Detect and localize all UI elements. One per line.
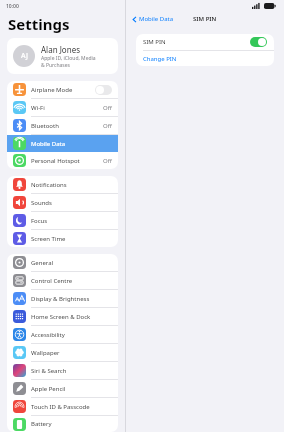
button[interactable]: Airplane Mode xyxy=(7,81,118,98)
staticText: Touch ID & Passcode xyxy=(31,403,112,411)
button[interactable] xyxy=(250,37,267,47)
button[interactable]: Notifications xyxy=(7,176,118,193)
button[interactable]: Apple Pencil xyxy=(7,380,118,397)
staticText: General xyxy=(31,259,112,267)
staticText: Wi-Fi xyxy=(31,104,103,112)
staticText: SIM PIN xyxy=(143,38,250,46)
staticText: Mobile Data xyxy=(139,15,174,23)
button[interactable]: Wi-Fi xyxy=(7,99,118,116)
staticText: Display & Brightness xyxy=(31,295,112,303)
staticText: Alan Jones xyxy=(41,44,80,55)
staticText: Change PIN xyxy=(143,55,177,63)
button[interactable]: Mobile Data xyxy=(130,13,176,25)
button[interactable]: Screen Time xyxy=(7,230,118,247)
staticText: Battery xyxy=(31,420,112,428)
staticText: Sounds xyxy=(31,199,112,207)
staticText: SIM PIN xyxy=(193,15,217,23)
button[interactable]: Battery xyxy=(7,416,118,432)
staticText: AJ xyxy=(21,51,28,61)
staticText: Wallpaper xyxy=(31,349,112,357)
staticText: Airplane Mode xyxy=(31,86,95,94)
button[interactable]: Touch ID & Passcode xyxy=(7,398,118,415)
staticText: Off xyxy=(103,104,112,112)
staticText: Notifications xyxy=(31,181,112,189)
button[interactable]: Sounds xyxy=(7,194,118,211)
staticText: Apple Pencil xyxy=(31,385,112,393)
button[interactable]: Change PIN xyxy=(136,51,274,66)
staticText: 10:00 xyxy=(6,3,19,10)
button[interactable]: Focus xyxy=(7,212,118,229)
button[interactable] xyxy=(95,85,112,95)
staticText: Focus xyxy=(31,217,112,225)
staticText: Off xyxy=(103,122,112,130)
button[interactable]: Home Screen & Dock xyxy=(7,308,118,325)
staticText: Settings xyxy=(8,14,70,34)
staticText: Off xyxy=(103,157,112,165)
button[interactable]: Siri & Search xyxy=(7,362,118,379)
button[interactable]: Display & Brightness xyxy=(7,290,118,307)
staticText: Screen Time xyxy=(31,235,112,243)
staticText: Control Centre xyxy=(31,277,112,285)
staticText: Siri & Search xyxy=(31,367,112,375)
button[interactable]: Personal Hotspot xyxy=(7,152,118,169)
staticText: Bluetooth xyxy=(31,122,103,130)
staticText: Apple ID, iCloud, Media & Purchases xyxy=(41,55,96,68)
button[interactable]: Mobile Data xyxy=(7,135,118,152)
button[interactable]: Wallpaper xyxy=(7,344,118,361)
staticText: Mobile Data xyxy=(31,140,112,148)
staticText: Home Screen & Dock xyxy=(31,313,112,321)
button[interactable]: Bluetooth xyxy=(7,117,118,134)
button[interactable]: SIM PIN xyxy=(136,34,274,50)
staticText: Accessibility xyxy=(31,331,112,339)
button[interactable]: General xyxy=(7,254,118,271)
button[interactable]: Accessibility xyxy=(7,326,118,343)
staticText: Personal Hotspot xyxy=(31,157,103,165)
button[interactable]: Control Centre xyxy=(7,272,118,289)
button[interactable]: AJ xyxy=(7,38,118,74)
